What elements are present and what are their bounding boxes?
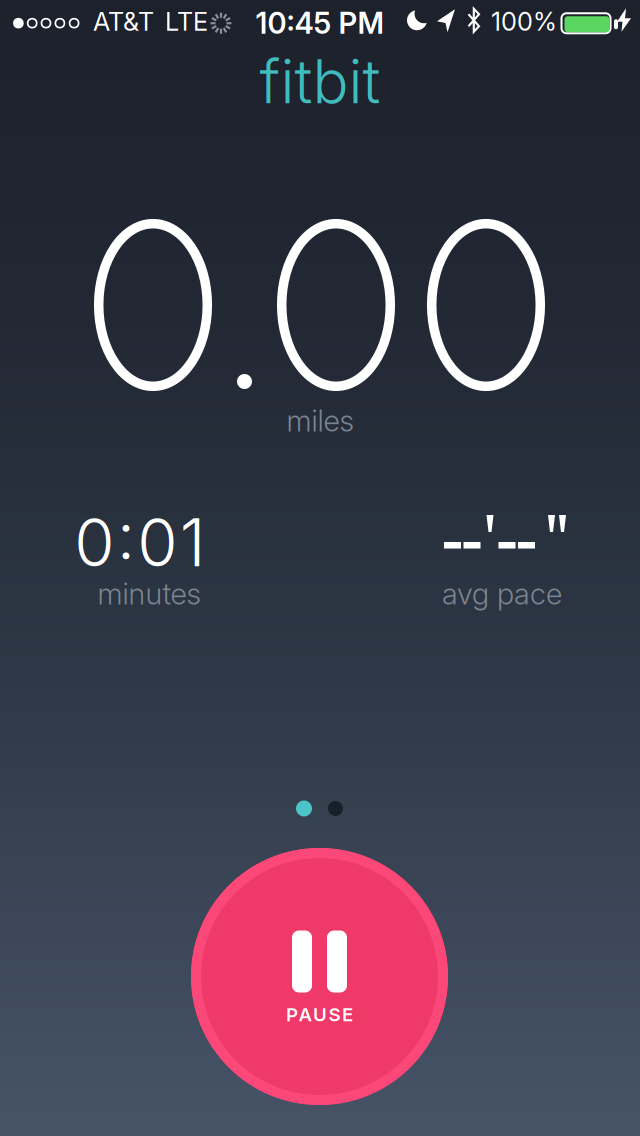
staticText: 100% xyxy=(491,6,557,37)
button[interactable]: Page 1 of 2 xyxy=(296,800,343,816)
staticText: fitbit xyxy=(259,45,380,118)
staticText: PAUSE xyxy=(286,1003,353,1026)
button[interactable]: Pause xyxy=(191,848,448,1105)
staticText: avg pace xyxy=(442,576,562,611)
staticText: miles xyxy=(286,403,353,438)
staticText: LTE xyxy=(165,6,208,37)
staticText: 10:45 PM xyxy=(255,5,384,41)
staticText: minutes xyxy=(97,576,200,611)
staticText: 0:01 xyxy=(74,503,206,582)
staticText: AT&T xyxy=(93,6,154,37)
